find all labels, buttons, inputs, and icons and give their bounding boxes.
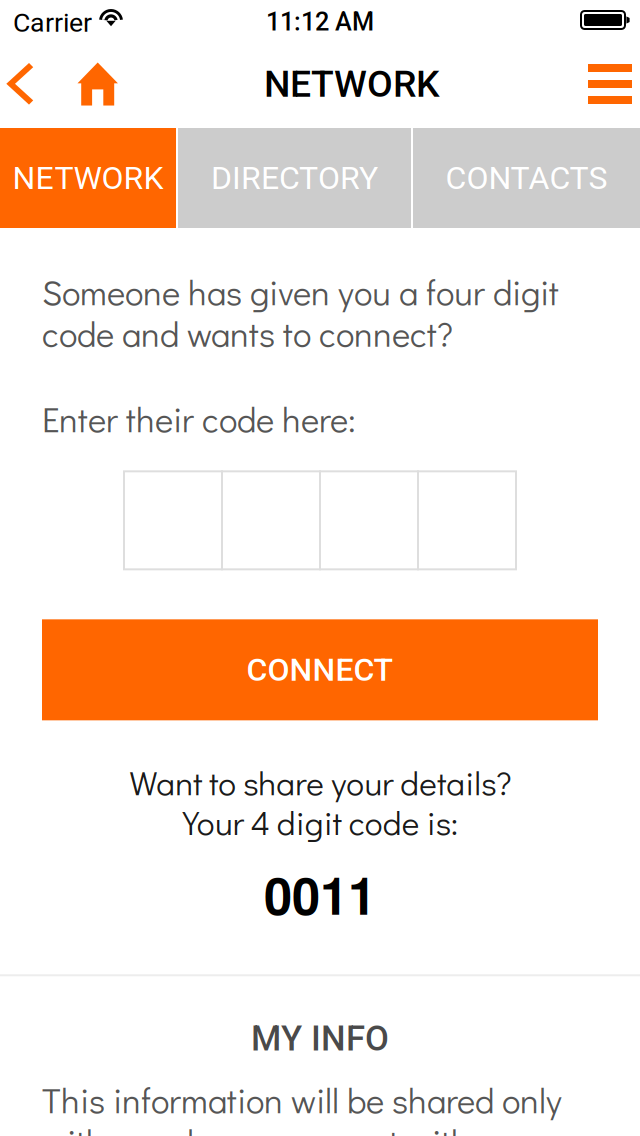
staticText: This information will be shared only wit… bbox=[42, 1077, 562, 1136]
button[interactable]: CONNECT bbox=[42, 619, 598, 720]
button[interactable]: DIRECTORY bbox=[178, 128, 411, 228]
staticText: MY INFO bbox=[251, 1018, 389, 1059]
staticText: NETWORK bbox=[12, 159, 163, 197]
staticText: 11:12 AM bbox=[266, 7, 374, 37]
staticText: NETWORK bbox=[264, 62, 440, 106]
staticText: Enter their code here: bbox=[42, 396, 356, 441]
button[interactable]: Menu bbox=[582, 40, 638, 128]
button[interactable]: Back bbox=[0, 40, 40, 128]
button[interactable]: Home bbox=[72, 40, 124, 128]
staticText: Someone has given you a four digit code … bbox=[42, 269, 559, 356]
staticText: CONNECT bbox=[246, 651, 393, 689]
staticText: CONTACTS bbox=[445, 159, 607, 197]
staticText: 0011 bbox=[264, 858, 376, 930]
staticText: DIRECTORY bbox=[211, 159, 378, 197]
button[interactable]: NETWORK bbox=[0, 128, 176, 228]
staticText: Want to share your details? Your 4 digit… bbox=[129, 760, 511, 844]
button[interactable]: CONTACTS bbox=[413, 128, 640, 228]
staticText: Carrier bbox=[13, 7, 92, 38]
